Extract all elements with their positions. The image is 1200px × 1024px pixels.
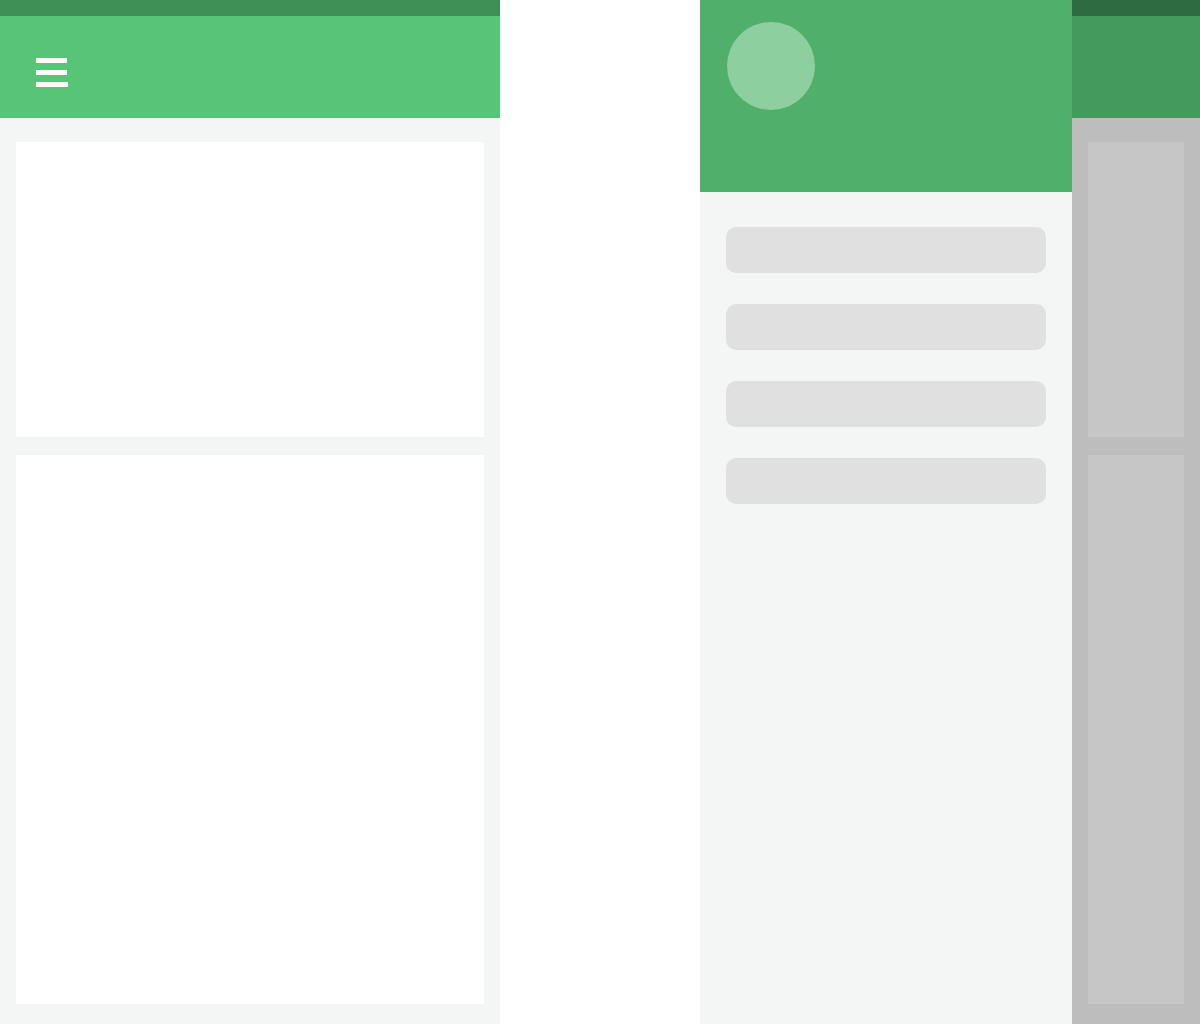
- button[interactable]: Account avatar: [727, 22, 815, 110]
- button[interactable]: Open navigation menu: [30, 50, 74, 94]
